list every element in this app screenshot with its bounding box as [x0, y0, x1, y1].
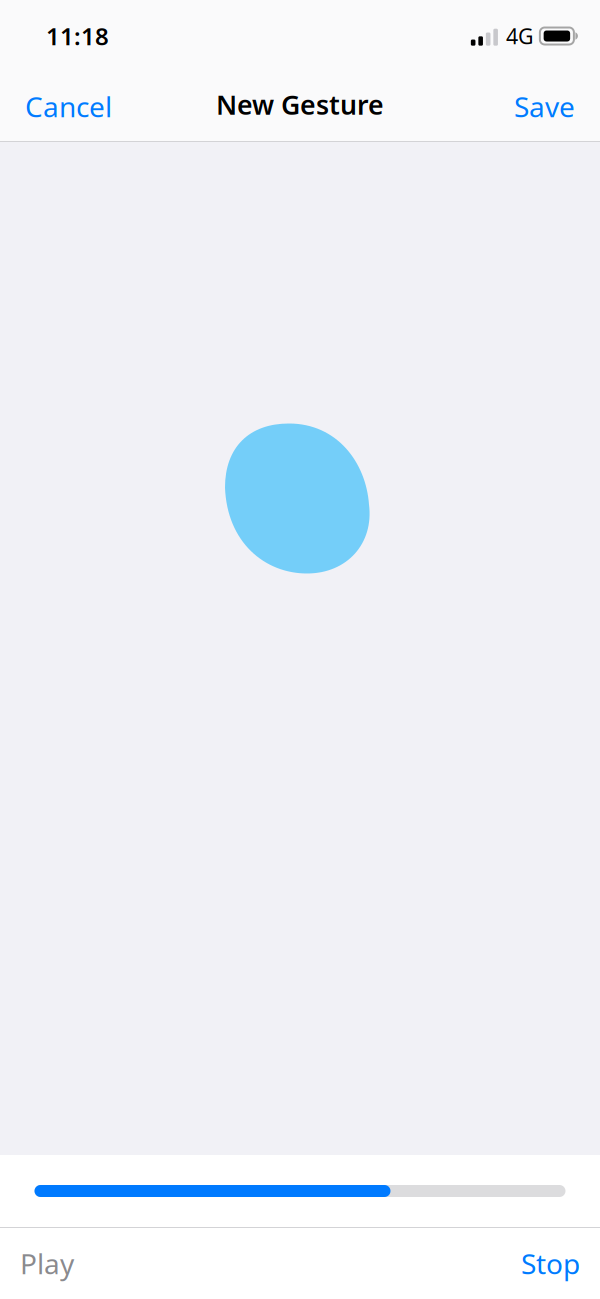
staticText: New Gesture	[216, 87, 384, 122]
staticText: 4G	[506, 22, 534, 50]
staticText: Save	[514, 88, 575, 125]
button[interactable]: Cancel	[0, 76, 128, 137]
staticText: 11:18	[46, 20, 109, 52]
button[interactable]: Save	[498, 76, 600, 137]
button[interactable]: Stop	[501, 1231, 600, 1296]
staticText: Cancel	[25, 88, 112, 125]
staticText: Stop	[521, 1245, 580, 1282]
button[interactable]: Play	[0, 1231, 94, 1296]
staticText: Play	[20, 1245, 74, 1282]
